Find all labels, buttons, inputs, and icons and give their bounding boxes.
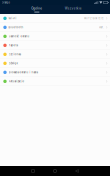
staticText: Blokada ekranu i hasła (8, 71, 37, 74)
button[interactable]: Jasność ekranu (0, 32, 110, 41)
button[interactable]: Back (66, 166, 88, 176)
button[interactable]: Czcionka (0, 50, 110, 59)
staticText: FRITZ!Box 7272 (84, 17, 104, 20)
button[interactable]: Recent apps (22, 166, 44, 176)
button[interactable]: Tapeta (0, 41, 110, 50)
button[interactable]: Bluetooth (0, 23, 110, 32)
staticText: Jasność ekranu (8, 35, 29, 38)
button[interactable]: Home (44, 166, 66, 176)
staticText: Orange (1, 1, 9, 4)
staticText: Wszystkie (65, 7, 82, 10)
button[interactable]: Wszystkie (55, 5, 91, 14)
staticText: Wi-Fi (8, 17, 16, 20)
staticText: Wył. (99, 26, 104, 29)
staticText: Dźwięk (8, 62, 17, 65)
staticText: Tapeta (8, 44, 17, 47)
button[interactable]: Aktualizacje (0, 77, 110, 86)
button[interactable]: Ogólne (19, 5, 55, 14)
button[interactable]: Dźwięk (0, 59, 110, 68)
staticText: Aktualizacje (8, 80, 24, 83)
staticText: Czcionka (8, 53, 20, 56)
button[interactable]: Blokada ekranu i hasła (0, 68, 110, 77)
staticText: Bluetooth (8, 26, 23, 29)
staticText: Ogólne (31, 7, 42, 10)
button[interactable]: Wi-Fi (0, 14, 110, 23)
